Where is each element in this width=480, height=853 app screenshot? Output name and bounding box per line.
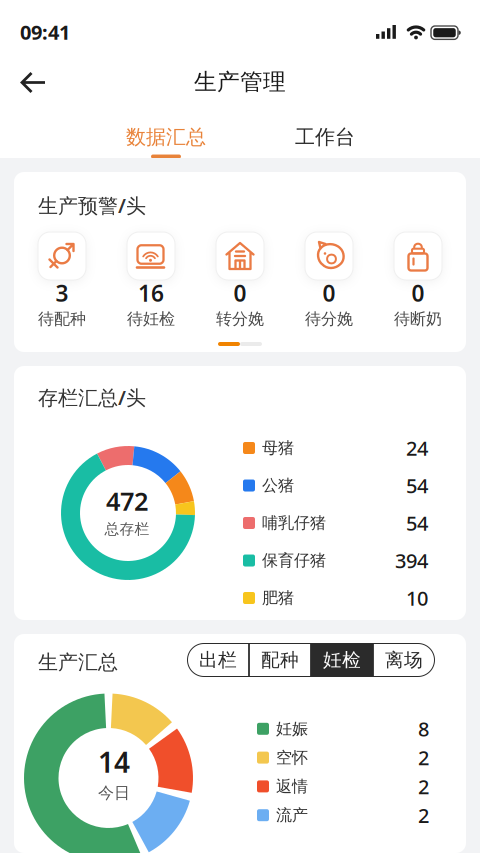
staticText: 2 <box>418 802 429 828</box>
staticText: 转分娩 <box>216 309 264 329</box>
button[interactable]: 0 <box>284 228 373 332</box>
staticText: 生产预警/头 <box>38 192 146 219</box>
button[interactable]: 出栏 <box>187 643 249 677</box>
staticText: 3 <box>55 278 68 308</box>
staticText: 总存栏 <box>104 520 149 538</box>
staticText: 10 <box>406 585 428 611</box>
button[interactable]: 离场 <box>373 643 435 677</box>
staticText: 流产 <box>276 805 308 825</box>
staticText: 返情 <box>276 777 308 796</box>
staticText: 54 <box>406 510 428 536</box>
staticText: 394 <box>395 547 428 574</box>
staticText: 离场 <box>385 648 423 671</box>
staticText: 8 <box>418 715 429 742</box>
staticText: 保育仔猪 <box>262 551 326 570</box>
button[interactable]: 16 <box>106 228 195 332</box>
button[interactable]: 3 <box>17 228 106 332</box>
staticText: 2 <box>418 773 429 800</box>
staticText: 母猪 <box>262 438 294 458</box>
button[interactable]: 0 <box>373 228 462 332</box>
staticText: 16 <box>138 278 164 308</box>
staticText: 配种 <box>261 648 299 671</box>
staticText: 0 <box>233 278 246 308</box>
staticText: 待妊检 <box>127 309 175 329</box>
staticText: 空怀 <box>276 748 308 767</box>
staticText: 24 <box>406 435 428 461</box>
staticText: 生产管理 <box>194 68 286 96</box>
button[interactable]: 数据汇总 <box>86 117 246 157</box>
button[interactable] <box>0 65 66 100</box>
button[interactable]: 妊检 <box>311 643 373 677</box>
staticText: 肥猪 <box>262 588 294 608</box>
staticText: 待分娩 <box>305 309 353 329</box>
staticText: 今日 <box>98 783 130 803</box>
button[interactable]: 配种 <box>249 643 311 677</box>
staticText: 哺乳仔猪 <box>262 513 326 533</box>
staticText: 妊娠 <box>276 719 308 739</box>
staticText: 存栏汇总/头 <box>38 384 146 411</box>
staticText: 0 <box>322 278 335 308</box>
staticText: 出栏 <box>199 648 237 671</box>
staticText: 待断奶 <box>394 309 442 329</box>
staticText: 生产汇总 <box>38 650 118 675</box>
staticText: 2 <box>418 744 429 771</box>
staticText: 09:41 <box>20 19 70 45</box>
staticText: 472 <box>106 484 148 518</box>
staticText: 工作台 <box>295 125 355 149</box>
staticText: 14 <box>98 743 130 781</box>
staticText: 妊检 <box>323 648 361 671</box>
button[interactable]: 工作台 <box>255 117 395 157</box>
staticText: 公猪 <box>262 476 294 495</box>
staticText: 数据汇总 <box>126 125 206 149</box>
staticText: 54 <box>406 472 428 499</box>
staticText: 待配种 <box>38 309 86 329</box>
staticText: 0 <box>411 278 424 308</box>
button[interactable]: 0 <box>195 228 284 332</box>
